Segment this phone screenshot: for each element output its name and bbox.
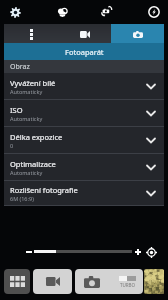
staticText: Automaticky [10, 115, 43, 122]
button[interactable]: Scene mode [56, 6, 68, 18]
button[interactable]: Camera settings [111, 24, 164, 43]
staticText: Fotoaparát [65, 47, 104, 57]
button[interactable]: Gallery [144, 269, 164, 294]
staticText: Vyvážení bílé [10, 78, 56, 88]
button[interactable]: Zoom in [132, 246, 143, 258]
staticText: ISO [10, 105, 23, 115]
button[interactable]: Record video [33, 269, 72, 294]
staticText: Délka expozice [10, 132, 63, 142]
staticText: Optimalizace [10, 159, 56, 169]
staticText: 6M (16:9) [10, 195, 34, 202]
button[interactable]: Focus [145, 246, 158, 259]
button[interactable]: Délka expozice [4, 127, 164, 154]
button[interactable]: Flash [148, 6, 160, 18]
button[interactable]: More options [4, 24, 58, 43]
staticText: Automaticky [10, 88, 43, 95]
button[interactable]: Take photo [75, 269, 143, 294]
button[interactable]: Modes [4, 269, 30, 294]
button[interactable]: Vyvážení bílé [4, 73, 164, 100]
staticText: Automaticky [10, 169, 43, 176]
button[interactable]: Rozlišení fotografie [4, 181, 164, 206]
button[interactable]: Zoom out [24, 246, 34, 258]
button[interactable]: Video settings [58, 24, 111, 43]
button[interactable]: Switch camera [101, 5, 113, 17]
staticText: 0 [10, 142, 14, 149]
button[interactable]: ISO [4, 100, 164, 127]
staticText: TURBO [120, 282, 136, 288]
button[interactable]: Zoom slider [34, 250, 132, 253]
staticText: Rozlišení fotografie [10, 185, 78, 195]
staticText: Obraz [10, 62, 30, 72]
button[interactable]: Settings [9, 6, 21, 18]
button[interactable]: Optimalizace [4, 154, 164, 181]
